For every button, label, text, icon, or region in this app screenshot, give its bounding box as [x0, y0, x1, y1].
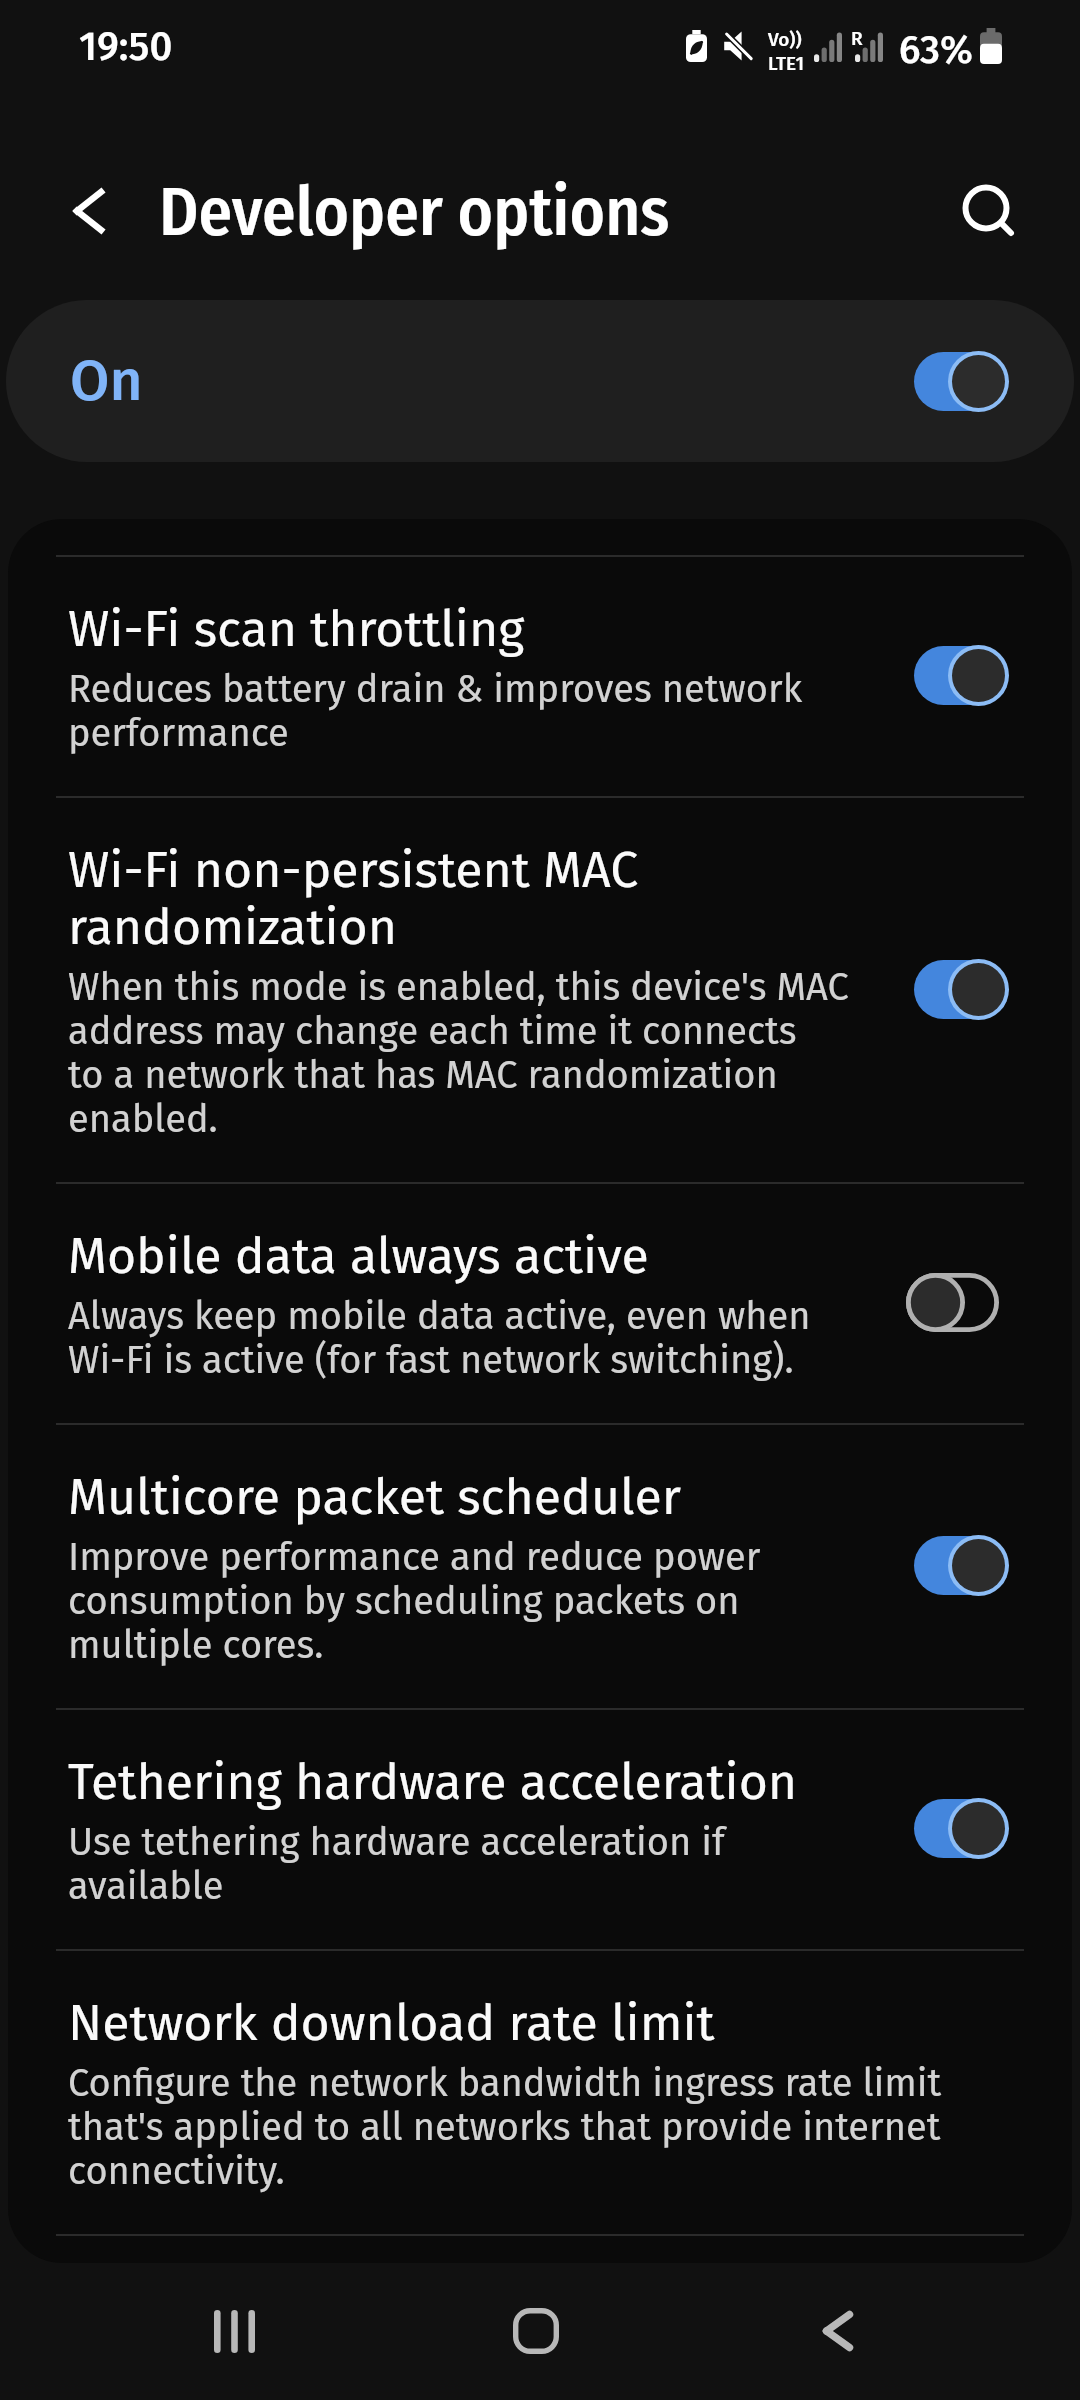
staticText: Multicore packet scheduler — [68, 1470, 681, 1527]
staticText: R — [851, 27, 863, 50]
staticText: 19:50 — [79, 24, 173, 70]
staticText: Wi-Fi scan throttling — [68, 602, 525, 659]
staticText: Vo)) — [768, 28, 802, 51]
staticText: On — [70, 347, 143, 415]
button[interactable]: Tethering hardware acceleration — [8, 1710, 1072, 1949]
staticText: 63% — [899, 27, 973, 73]
staticText: Mobile data always active — [68, 1229, 649, 1286]
staticText: Always keep mobile data active, even whe… — [68, 1295, 811, 1383]
button[interactable]: Home — [468, 2263, 604, 2399]
staticText: Improve performance and reduce power con… — [68, 1536, 761, 1668]
staticText: Wi-Fi non-persistent MAC randomization — [68, 843, 639, 957]
staticText: LTE1 — [768, 52, 805, 75]
button[interactable]: Mobile data always active — [8, 1184, 1072, 1423]
staticText: Developer options — [159, 173, 670, 253]
staticText: Network download rate limit — [68, 1996, 715, 2053]
staticText: When this mode is enabled, this device's… — [68, 966, 849, 1142]
button[interactable]: Recent apps — [166, 2263, 302, 2399]
button[interactable]: Multicore packet scheduler — [8, 1425, 1072, 1708]
button[interactable]: Search — [933, 155, 1045, 267]
staticText: Tethering hardware acceleration — [68, 1755, 798, 1812]
staticText: Configure the network bandwidth ingress … — [68, 2062, 942, 2194]
button[interactable]: Wi-Fi scan throttling — [8, 557, 1072, 796]
button[interactable]: On — [6, 300, 1074, 462]
staticText: Use tethering hardware acceleration if a… — [68, 1821, 725, 1909]
staticText: Reduces battery drain & improves network… — [68, 668, 803, 756]
button[interactable]: Wi-Fi non-persistent MAC randomization — [8, 798, 1072, 1182]
button[interactable]: Navigate up — [33, 155, 145, 267]
button[interactable]: Back — [770, 2263, 906, 2399]
button[interactable]: Network download rate limit — [8, 1951, 1072, 2234]
